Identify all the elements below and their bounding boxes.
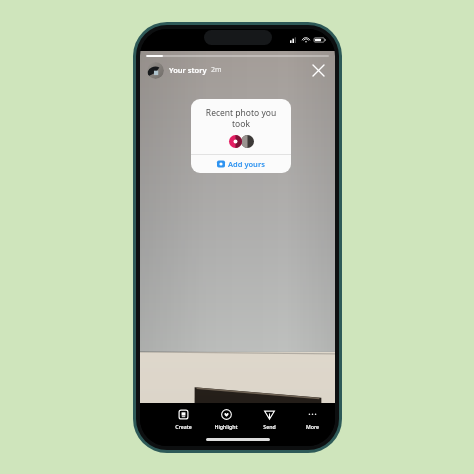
button[interactable]: Create — [170, 407, 196, 431]
button[interactable]: Highlight — [213, 407, 239, 431]
staticText: Create — [175, 423, 192, 430]
staticText: Your story — [169, 65, 207, 75]
button[interactable]: More — [299, 407, 325, 431]
staticText: 2m — [211, 65, 222, 75]
button[interactable]: Add yours — [191, 155, 291, 173]
button[interactable] — [147, 62, 164, 79]
staticText: More — [306, 423, 319, 430]
staticText: Highlight — [214, 423, 238, 430]
staticText: Send — [263, 423, 276, 430]
button[interactable]: Close story — [308, 60, 328, 80]
staticText: Recent photo you took — [199, 107, 283, 129]
staticText: Add yours — [228, 159, 265, 169]
button[interactable]: Recent photo you took — [191, 99, 291, 173]
button[interactable]: Send — [256, 407, 282, 431]
